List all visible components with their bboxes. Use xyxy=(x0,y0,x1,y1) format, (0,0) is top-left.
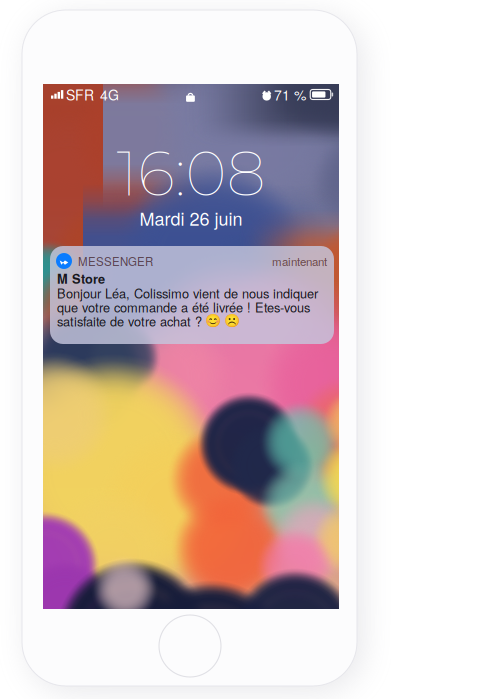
staticText: Bonjour Léa, Colissimo vient de nous ind… xyxy=(57,284,318,302)
staticText: 71 % xyxy=(274,84,306,104)
staticText: 16:08 xyxy=(116,135,265,211)
staticText: 4G xyxy=(100,84,119,104)
staticText: que votre commande a été livrée ! Etes-v… xyxy=(57,298,310,316)
staticText: maintenant xyxy=(272,253,327,269)
staticText: Mardi 26 juin xyxy=(139,205,242,231)
staticText: SFR xyxy=(66,84,94,104)
button[interactable]: MESSENGER xyxy=(50,246,334,344)
staticText: satisfaite de votre achat ? xyxy=(57,312,202,330)
staticText: M Store xyxy=(57,269,105,288)
staticText: MESSENGER xyxy=(78,253,153,269)
staticText: ☹️ xyxy=(224,313,240,328)
staticText: 😊 xyxy=(205,313,221,328)
